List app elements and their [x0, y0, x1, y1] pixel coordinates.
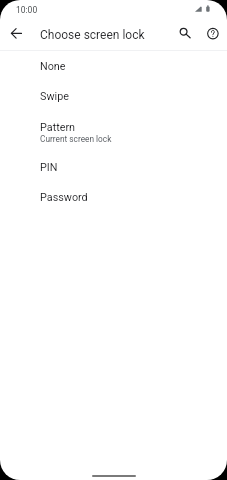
staticText: Password [40, 191, 88, 204]
button[interactable]: Password [0, 183, 227, 213]
button[interactable]: Pattern [0, 112, 227, 153]
staticText: Pattern [40, 121, 76, 134]
button[interactable]: Swipe [0, 82, 227, 112]
staticText: 10:00 [16, 5, 38, 15]
button[interactable]: Back [5, 22, 28, 45]
staticText: Choose screen lock [40, 28, 145, 42]
button[interactable]: Help [202, 22, 224, 44]
staticText: Current screen lock [40, 134, 112, 144]
button[interactable]: PIN [0, 153, 227, 183]
staticText: PIN [40, 161, 58, 174]
staticText: Swipe [40, 90, 69, 103]
button[interactable]: Search [172, 22, 195, 45]
button[interactable]: None [0, 52, 227, 82]
staticText: None [40, 60, 66, 73]
